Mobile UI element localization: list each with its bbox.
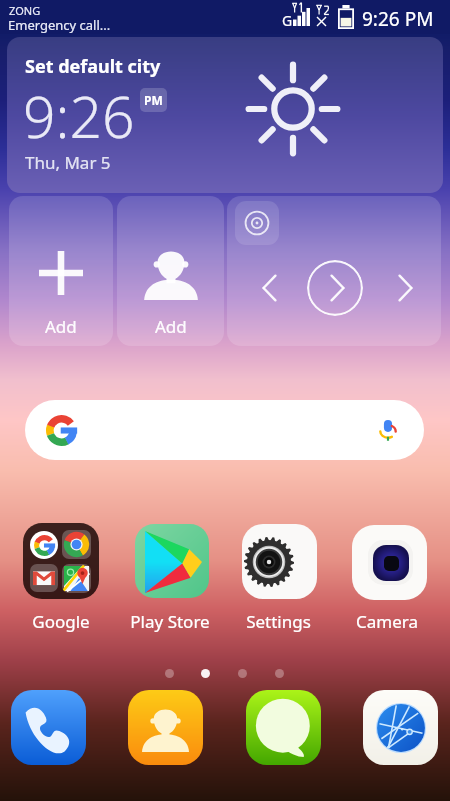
staticText: 9:26 — [23, 77, 135, 155]
button[interactable]: Music app — [227, 196, 441, 346]
staticText: Add — [155, 315, 187, 338]
button[interactable]: Page 1 — [165, 669, 174, 678]
staticText: Set default city — [25, 54, 161, 79]
button[interactable]: Camera — [333, 523, 441, 633]
staticText: Settings — [246, 610, 311, 633]
button[interactable]: Browser — [363, 690, 438, 765]
staticText: Camera — [356, 610, 418, 633]
button[interactable]: Page 2 — [201, 669, 210, 678]
staticText: Google — [32, 610, 90, 633]
button[interactable]: Google — [7, 523, 115, 633]
button[interactable]: Contacts — [128, 690, 203, 765]
button[interactable]: Previous — [251, 270, 287, 306]
button[interactable]: Play Store — [116, 523, 224, 633]
button[interactable]: Add — [117, 196, 224, 346]
other: Voice search — [376, 418, 400, 442]
staticText: ZONG — [9, 3, 41, 18]
button[interactable]: Play — [307, 260, 363, 316]
staticText: Play Store — [130, 610, 210, 633]
button[interactable]: Messages — [246, 690, 321, 765]
button[interactable]: Page 4 — [275, 669, 284, 678]
staticText: Thu, Mar 5 — [25, 151, 111, 174]
staticText: 9:26 PM — [362, 6, 434, 32]
staticText: G — [282, 11, 293, 30]
staticText: Emergency call... — [8, 16, 111, 34]
button[interactable]: Set default city — [7, 37, 443, 193]
button[interactable]: Voice search — [25, 400, 424, 460]
button[interactable]: Settings — [224, 523, 332, 633]
button[interactable]: Phone — [11, 690, 86, 765]
button[interactable]: Next — [387, 270, 423, 306]
button[interactable]: Music app — [235, 201, 279, 245]
button[interactable]: Page 3 — [238, 669, 247, 678]
button[interactable]: Add — [9, 196, 113, 346]
staticText: PM — [144, 92, 163, 108]
staticText: Add — [45, 315, 77, 338]
